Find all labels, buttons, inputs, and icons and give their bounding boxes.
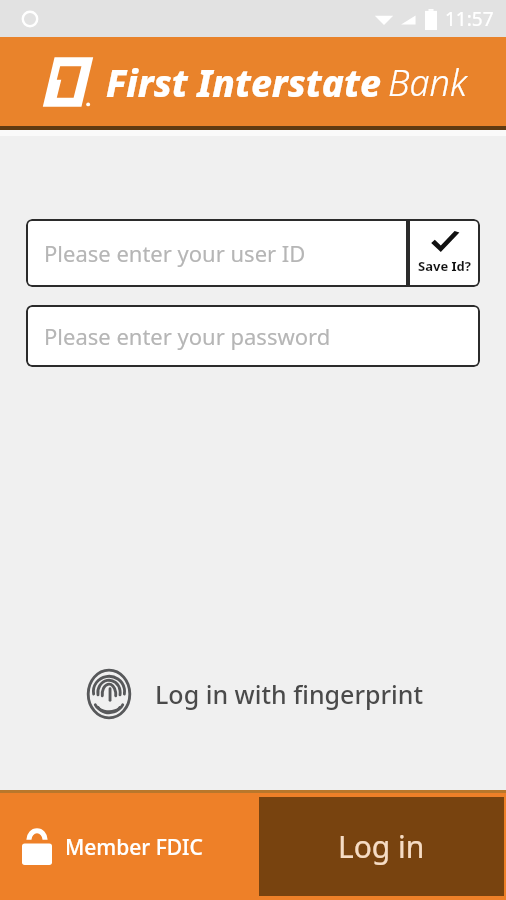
button[interactable]: Save Id — [408, 219, 480, 287]
staticText: Please enter your password — [44, 321, 331, 351]
staticText: Save Id? — [418, 257, 471, 275]
button[interactable]: Please enter your password — [26, 305, 480, 367]
staticText: 11:57 — [445, 6, 494, 32]
button[interactable]: Please enter your user ID — [26, 219, 408, 287]
staticText: Please enter your user ID — [44, 238, 306, 268]
button[interactable]: Log in with fingerprint — [0, 660, 506, 728]
button[interactable]: Log in — [259, 797, 504, 896]
staticText: Bank — [388, 58, 467, 107]
staticText: First Interstate — [106, 57, 381, 107]
staticText: Member FDIC — [65, 833, 203, 862]
staticText: Log in with fingerprint — [155, 677, 424, 711]
button[interactable]: Member FDIC — [0, 821, 215, 873]
staticText: Log in — [338, 826, 425, 867]
